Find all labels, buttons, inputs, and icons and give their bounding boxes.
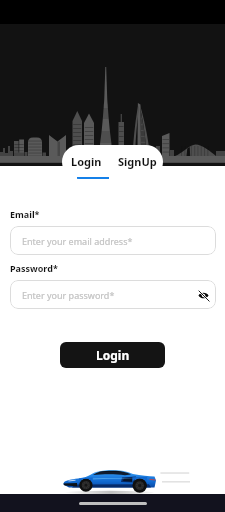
staticText: SignUp (118, 154, 157, 169)
button[interactable]: Enter your email address* (10, 226, 216, 255)
staticText: Enter your password* (22, 289, 115, 301)
button[interactable]: Login (60, 342, 165, 368)
button[interactable]: Show password (194, 286, 212, 304)
staticText: Login (96, 347, 130, 363)
button[interactable]: Login (62, 145, 111, 179)
staticText: Enter your email address* (22, 235, 133, 247)
button[interactable]: Enter your password* (10, 280, 216, 309)
staticText: Login (71, 154, 102, 169)
button[interactable]: SignUp (111, 145, 163, 179)
staticText: Email* (10, 208, 40, 220)
staticText: Password* (10, 262, 58, 274)
